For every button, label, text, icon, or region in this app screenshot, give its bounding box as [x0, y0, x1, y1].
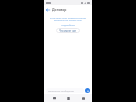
button[interactable]: Chats	[49, 94, 59, 102]
staticText: В начале чата появятся ваши вопросы по э…	[47, 16, 89, 22]
button[interactable]: Напишите сообщение	[46, 88, 84, 93]
staticText: Напишите сообщение	[48, 89, 74, 92]
staticText: Договор	[52, 7, 67, 12]
button[interactable]: Profile	[78, 94, 88, 102]
button[interactable]: Documents	[63, 94, 73, 102]
staticText: Подробнее	[46, 23, 90, 26]
staticText: Что умеет чат	[59, 29, 77, 32]
button[interactable]: Договор	[52, 7, 67, 12]
button[interactable]: Back	[44, 6, 51, 13]
button[interactable]: Что умеет чат	[56, 28, 80, 33]
button[interactable]: Send	[85, 88, 90, 93]
